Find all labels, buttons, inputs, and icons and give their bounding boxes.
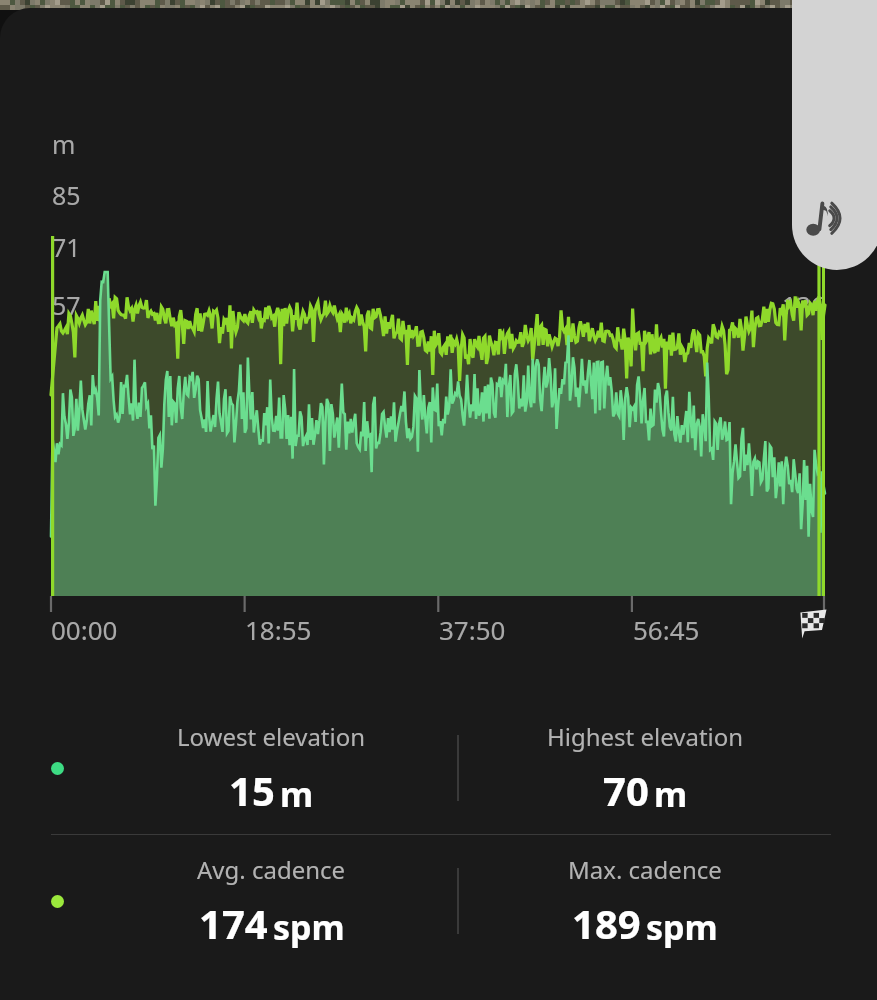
staticText: 109 [782,345,825,379]
staticText: 27 [796,507,825,541]
staticText: 54 [796,452,825,486]
staticText: 29 [52,398,81,432]
staticText: 71 [52,230,81,264]
staticText: spm [646,904,718,950]
button[interactable]: Music controls [792,0,877,270]
staticText: 1 [52,507,67,541]
staticText: m [280,771,314,817]
staticText: 15 [52,452,81,486]
staticText: 136 [782,288,825,322]
staticText: 85 [52,178,81,212]
staticText: 43 [52,345,81,379]
staticText: 174 [199,896,268,950]
staticText: 189 [572,896,641,950]
staticText: m [654,771,688,817]
staticText: 37:50 [439,612,506,647]
staticText: 18:55 [245,612,312,647]
staticText: Lowest elevation [177,720,366,753]
staticText: Max. cadence [568,853,722,886]
staticText: spm [273,904,345,950]
button[interactable]: Avg. cadence [0,835,877,967]
staticText: 00:00 [51,612,118,647]
button[interactable]: Lowest elevation [0,702,877,834]
staticText: Highest elevation [547,720,744,753]
staticText: 56:45 [633,612,700,647]
staticText: 15 [229,763,275,817]
staticText: 70 [603,763,649,817]
staticText: m [52,127,76,161]
staticText: 81 [796,398,825,432]
staticText: 57 [52,288,81,322]
staticText: Avg. cadence [197,853,346,886]
